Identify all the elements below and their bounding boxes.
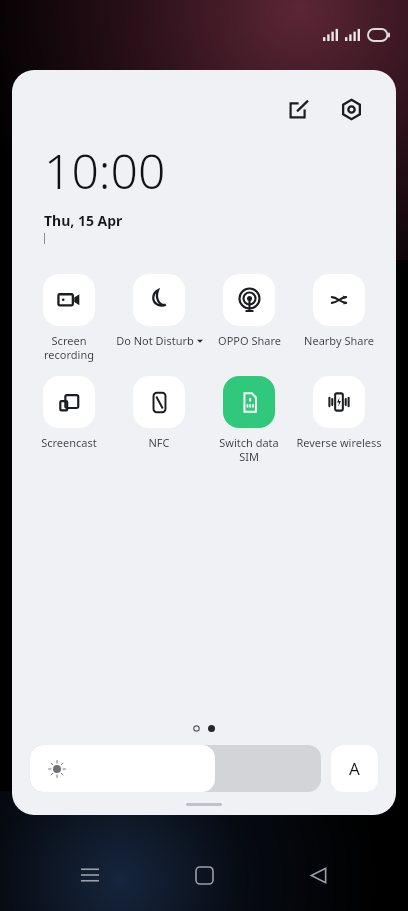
staticText: Reverse wireless [296,435,382,450]
staticText: Thu, 15 Apr [44,211,123,230]
button[interactable]: Reverse wireless [294,376,384,450]
staticText: Nearby Share [304,333,374,348]
staticText: A [349,757,360,780]
button[interactable]: Switch data SIM [204,376,294,464]
button[interactable]: OPPO Share [204,274,294,348]
button[interactable]: Do Not Disturb [114,274,204,348]
button[interactable]: NFC [114,376,204,450]
staticText: Switch data SIM [219,435,279,464]
button[interactable]: Brightness [30,745,321,792]
button[interactable]: Edit quick settings [282,92,316,126]
button[interactable]: Nearby Share [294,274,384,348]
button[interactable]: Recent apps [66,851,114,899]
staticText: OPPO Share [218,333,281,348]
button[interactable]: Settings [334,92,368,126]
button[interactable]: Back [294,851,342,899]
staticText: Do Not Disturb [116,333,194,348]
staticText: 10:00 [44,138,166,203]
staticText: Screen recording [44,333,94,362]
button[interactable]: Screencast [24,376,114,450]
button[interactable]: Screen recording [24,274,114,362]
staticText: Screencast [41,435,97,450]
staticText: NFC [148,435,170,450]
button[interactable]: Home [180,851,228,899]
button[interactable]: A [331,745,378,792]
